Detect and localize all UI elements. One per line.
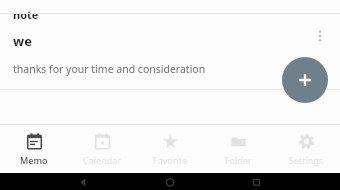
- button[interactable]: Folder: [204, 125, 272, 173]
- staticText: Settings: [289, 154, 324, 166]
- staticText: Favorite: [153, 154, 188, 166]
- staticText: Calendar: [83, 154, 121, 166]
- staticText: we: [13, 32, 32, 50]
- staticText: thanks for your time and consideration: [13, 62, 206, 76]
- staticText: note: [13, 7, 39, 20]
- staticText: Memo: [20, 154, 48, 166]
- staticText: Folder: [225, 154, 252, 166]
- button[interactable]: Favorite: [136, 125, 204, 173]
- button[interactable]: Settings: [272, 125, 340, 173]
- button[interactable]: Add note: [282, 57, 328, 103]
- button[interactable]: we: [0, 14, 340, 89]
- button[interactable]: More options: [306, 22, 334, 50]
- button[interactable]: Memo: [0, 125, 68, 173]
- button[interactable]: Calendar: [68, 125, 136, 173]
